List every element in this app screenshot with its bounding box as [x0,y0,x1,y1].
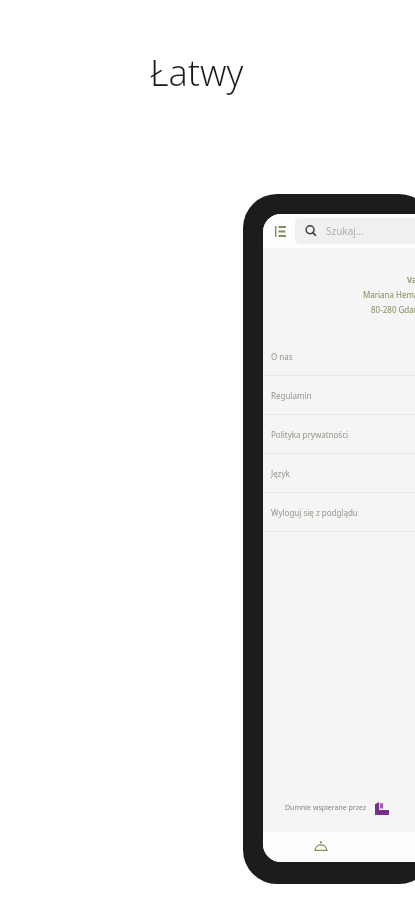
button[interactable]: Szukaj... [295,218,415,244]
staticText: O nas [271,351,293,362]
staticText: Vana [407,274,415,285]
button[interactable]: Polityka prywatności [263,415,415,454]
staticText: Wyloguj się z podglądu [271,507,358,518]
staticText: Regulamin [271,390,312,401]
button[interactable]: Menu dań [307,833,335,861]
staticText: Dumnie wspierane przez [285,803,367,813]
staticText: Polityka prywatności [271,429,349,440]
staticText: Język [271,468,290,479]
button[interactable]: Menu [269,220,291,242]
staticText: Szukaj... [326,224,364,238]
button[interactable]: Regulamin [263,376,415,415]
button[interactable]: Język [263,454,415,493]
staticText: 80-280 Gdańsk [371,304,415,315]
staticText: Mariana Hemara [363,289,415,300]
button[interactable]: O nas [263,337,415,376]
button[interactable]: Wyloguj się z podglądu [263,493,415,532]
staticText: Łatwy [150,48,244,97]
